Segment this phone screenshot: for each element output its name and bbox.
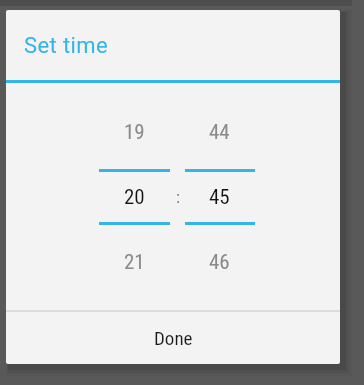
staticText: 20 <box>124 185 145 210</box>
staticText: 44 <box>209 120 230 145</box>
staticText: Done <box>154 327 193 349</box>
staticText: 19 <box>124 120 145 145</box>
staticText: : <box>176 187 180 207</box>
staticText: 46 <box>209 250 230 275</box>
staticText: 21 <box>124 250 145 275</box>
staticText: Set time <box>24 33 109 59</box>
staticText: 45 <box>209 185 230 210</box>
